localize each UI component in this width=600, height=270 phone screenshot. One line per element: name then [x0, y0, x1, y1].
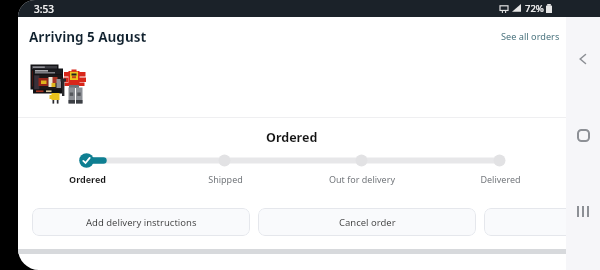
staticText: See all orders — [501, 30, 560, 43]
button[interactable]: See all orders — [440, 25, 560, 47]
staticText: Ordered — [69, 173, 106, 185]
button[interactable]: Cancel order — [258, 208, 476, 236]
button[interactable]: Arriving 5 August — [29, 28, 147, 48]
staticText: Delivered — [480, 173, 521, 185]
button[interactable]: Order item photo — [30, 60, 90, 108]
button[interactable]: Add delivery instructions — [32, 208, 250, 236]
button[interactable] — [484, 208, 566, 236]
staticText: Out for delivery — [329, 173, 395, 185]
staticText: 3:53 — [34, 2, 54, 16]
staticText: Ordered — [266, 129, 318, 146]
button[interactable]: Back — [569, 45, 597, 73]
button[interactable]: Recent apps — [569, 197, 597, 225]
staticText: Shipped — [208, 173, 243, 185]
staticText: 72% — [525, 2, 544, 15]
staticText: Cancel order — [339, 216, 396, 229]
staticText: Add delivery instructions — [86, 216, 197, 229]
button[interactable]: Home — [569, 121, 597, 149]
staticText: Arriving 5 August — [29, 28, 147, 46]
